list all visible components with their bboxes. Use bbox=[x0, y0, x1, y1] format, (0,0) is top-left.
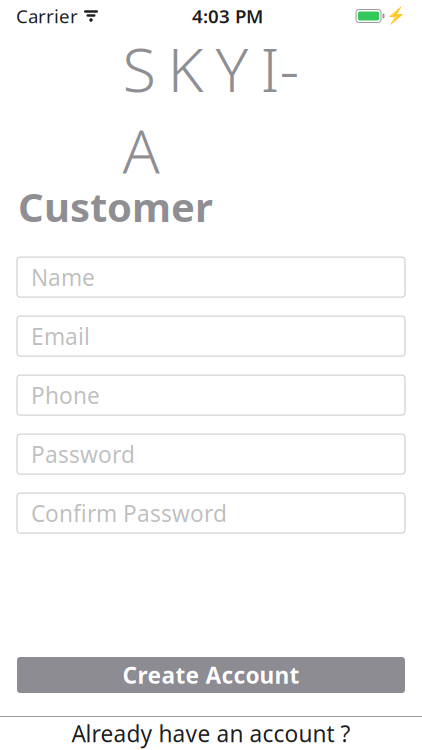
staticText: Name bbox=[31, 262, 95, 292]
staticText: Customer bbox=[18, 180, 213, 233]
staticText: Carrier bbox=[16, 4, 78, 28]
staticText: SKYIA bbox=[122, 28, 299, 190]
staticText: Phone bbox=[31, 380, 100, 410]
button[interactable]: Create Account bbox=[17, 657, 405, 693]
staticText: Confirm Password bbox=[31, 498, 227, 528]
button[interactable]: Already have an account ? bbox=[0, 717, 422, 750]
staticText: 4:03 PM bbox=[192, 4, 263, 28]
staticText: Email bbox=[31, 321, 90, 351]
staticText: Create Account bbox=[122, 660, 299, 690]
staticText: Already have an account ? bbox=[71, 718, 350, 748]
staticText: ⚡ bbox=[386, 7, 406, 25]
staticText: Password bbox=[31, 439, 135, 469]
